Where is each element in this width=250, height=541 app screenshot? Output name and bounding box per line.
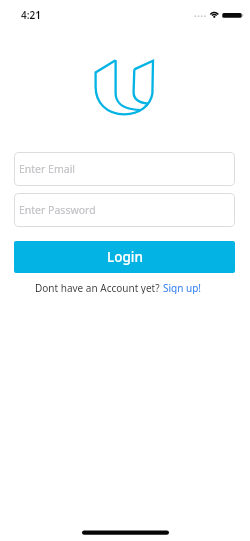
staticText: Login [107,248,143,266]
button[interactable]: Sign up! [163,281,202,294]
staticText: Dont have an Account yet? [35,281,163,294]
button[interactable]: Enter Password [14,193,235,227]
button[interactable]: Login [14,241,235,273]
staticText: Enter Email [19,162,76,176]
button[interactable]: Enter Email [14,152,235,186]
staticText: 4:21 [21,8,41,22]
staticText: Enter Password [19,203,96,217]
